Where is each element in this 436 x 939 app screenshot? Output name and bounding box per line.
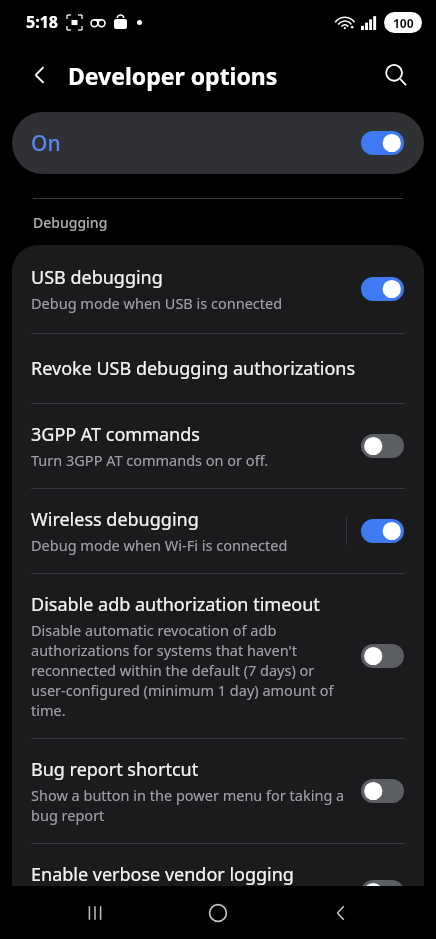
button[interactable]: Toggle off [361,880,404,904]
staticText: Disable automatic revocation of adb auth… [31,620,351,720]
button[interactable]: Revoke USB debugging authorizations [12,334,424,403]
button[interactable]: Toggle off [361,434,404,458]
button[interactable]: Toggle on [361,131,404,155]
button[interactable]: Toggle off [361,644,404,668]
staticText: Debugging [33,213,108,232]
staticText: USB debugging [31,265,163,290]
button[interactable]: Search [372,51,420,99]
button[interactable]: USB debugging [12,245,424,333]
staticText: Bug report shortcut [31,757,199,782]
button[interactable]: Home [190,886,246,939]
button[interactable]: Enable verbose vendor logging [12,844,424,939]
staticText: Revoke USB debugging authorizations [31,356,356,381]
button[interactable]: Wireless debugging [12,489,424,573]
button[interactable]: Toggle off [361,779,404,803]
staticText: 100 [393,15,414,31]
staticText: Debug mode when Wi-Fi is connected [31,535,288,555]
staticText: Disable adb authorization timeout [31,592,320,617]
staticText: 3GPP AT commands [31,422,200,447]
button[interactable]: Back [313,886,369,939]
button[interactable]: On [12,112,424,174]
button[interactable]: Recent apps [67,886,123,939]
staticText: Debug mode when USB is connected [31,293,283,313]
button[interactable]: Toggle on [361,277,404,301]
button[interactable]: Toggle on [361,519,404,543]
staticText: Enable verbose vendor logging [31,862,294,887]
staticText: Developer options [68,60,278,91]
staticText: Wireless debugging [31,507,199,532]
staticText: Include additional device-specific vendo… [31,890,351,921]
staticText: On [31,129,61,158]
button[interactable]: Disable adb authorization timeout [12,574,424,738]
button[interactable]: 3GPP AT commands [12,404,424,488]
staticText: 5:18 [26,11,58,33]
button[interactable]: Bug report shortcut [12,739,424,843]
button[interactable]: Back [16,51,64,99]
staticText: Show a button in the power menu for taki… [31,785,351,825]
staticText: Turn 3GPP AT commands on or off. [31,450,269,470]
